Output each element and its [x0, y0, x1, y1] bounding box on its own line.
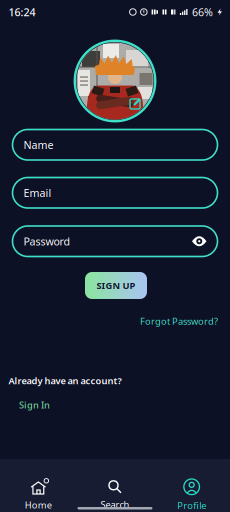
staticText: Search	[100, 498, 129, 511]
staticText: SIGN UP	[96, 279, 135, 292]
button[interactable]: Home	[0, 479, 77, 511]
button[interactable]: Profile	[153, 478, 230, 512]
staticText: 66%	[192, 5, 213, 19]
button[interactable]: Search	[77, 479, 153, 511]
button[interactable]: Password	[12, 226, 217, 256]
staticText: Profile	[177, 499, 206, 512]
button[interactable]: Show password	[192, 236, 206, 246]
staticText: Password	[23, 234, 70, 248]
button[interactable]: Name	[12, 129, 217, 160]
staticText: Name	[23, 138, 53, 152]
button[interactable]: Sign In	[19, 399, 50, 411]
staticText: Email	[23, 186, 51, 200]
staticText: Sign In	[19, 399, 50, 411]
button[interactable]: Forgot Password?	[140, 315, 218, 327]
staticText: Forgot Password?	[140, 315, 218, 327]
staticText: Already have an account?	[8, 374, 121, 387]
staticText: 16:24	[8, 5, 35, 19]
button[interactable]: Email	[12, 177, 217, 208]
button[interactable]: SIGN UP	[84, 272, 146, 299]
staticText: Home	[25, 499, 52, 511]
